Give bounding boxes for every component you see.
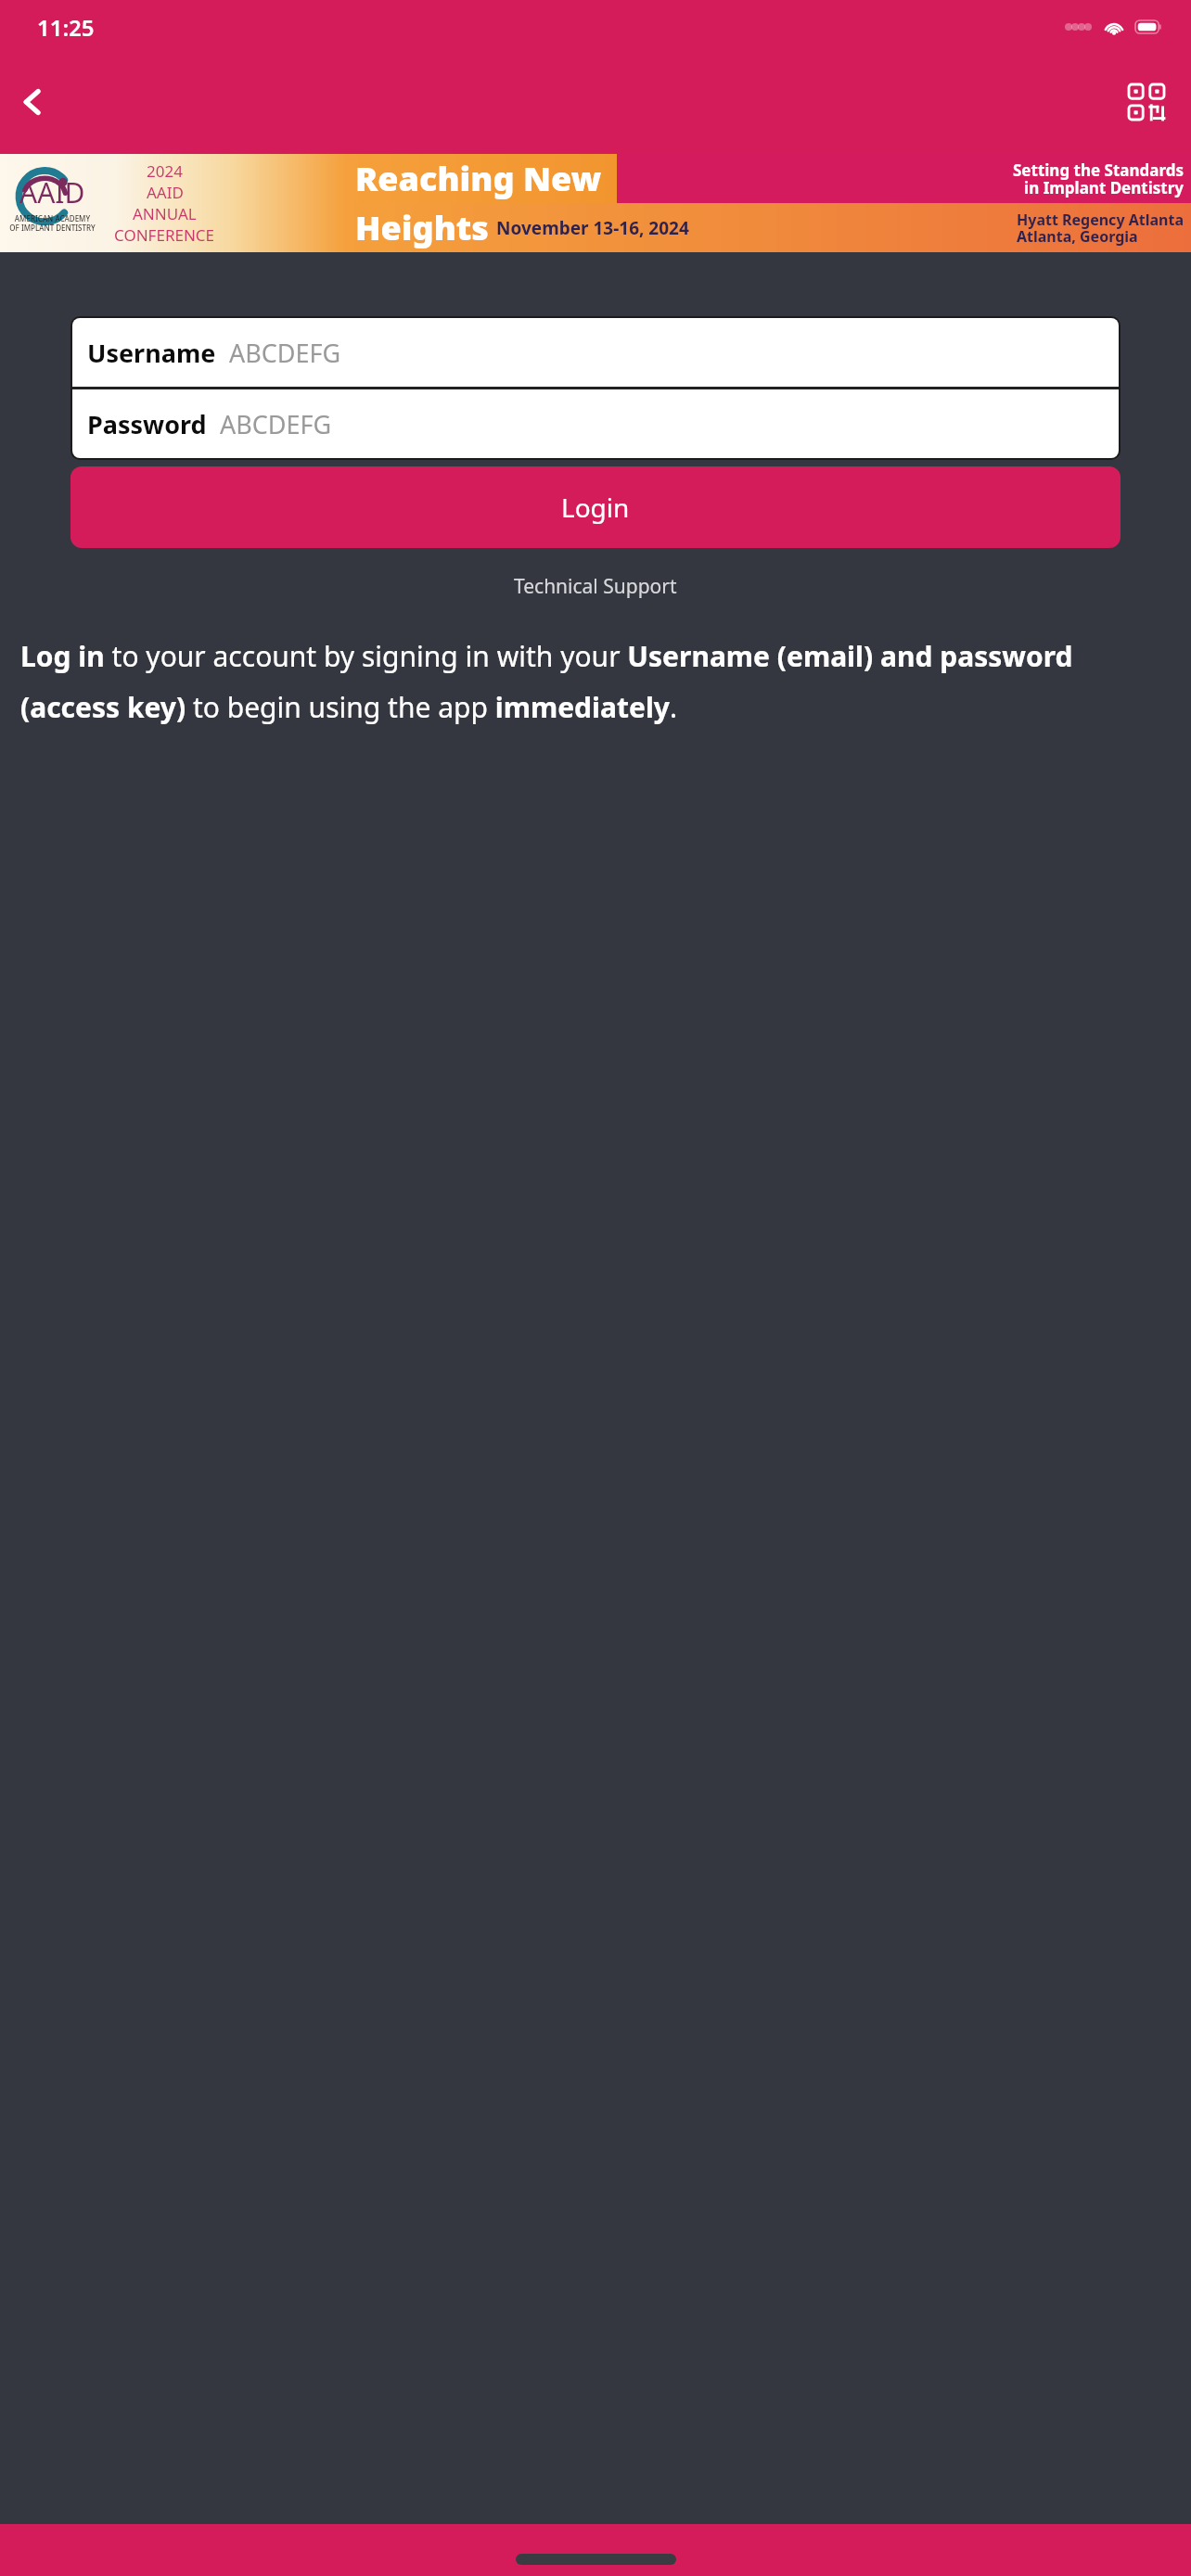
staticText: Reaching New [355, 156, 602, 201]
button[interactable]: Username [72, 318, 1119, 387]
staticText: Login [561, 490, 630, 525]
staticText: Heights [355, 205, 489, 250]
staticText: Log in to your account by signing in wit… [20, 637, 1171, 726]
staticText: AAID [19, 173, 85, 211]
staticText: Username [87, 336, 216, 370]
staticText: November 13-16, 2024 [496, 216, 689, 240]
button[interactable]: Back [6, 75, 59, 129]
button[interactable]: Technical Support [514, 573, 677, 600]
staticText: 2024 [147, 160, 183, 182]
button[interactable]: Password [72, 389, 1119, 458]
staticText: AMERICAN ACADEMY OF IMPLANT DENTISTRY [9, 213, 96, 233]
staticText: ABCDEFG [220, 407, 332, 441]
staticText: Hyatt Regency Atlanta Atlanta, Georgia [1017, 210, 1184, 247]
staticText: 11:25 [37, 12, 95, 43]
staticText: ANNUAL [133, 203, 197, 224]
staticText: Setting the Standards in Implant Dentist… [1012, 159, 1184, 198]
staticText: ABCDEFG [229, 336, 341, 370]
staticText: AAID [147, 182, 184, 203]
staticText: Password [87, 407, 207, 441]
staticText: CONFERENCE [114, 224, 215, 246]
button[interactable]: Scan QR code [1121, 76, 1172, 128]
button[interactable]: Login [70, 466, 1121, 548]
